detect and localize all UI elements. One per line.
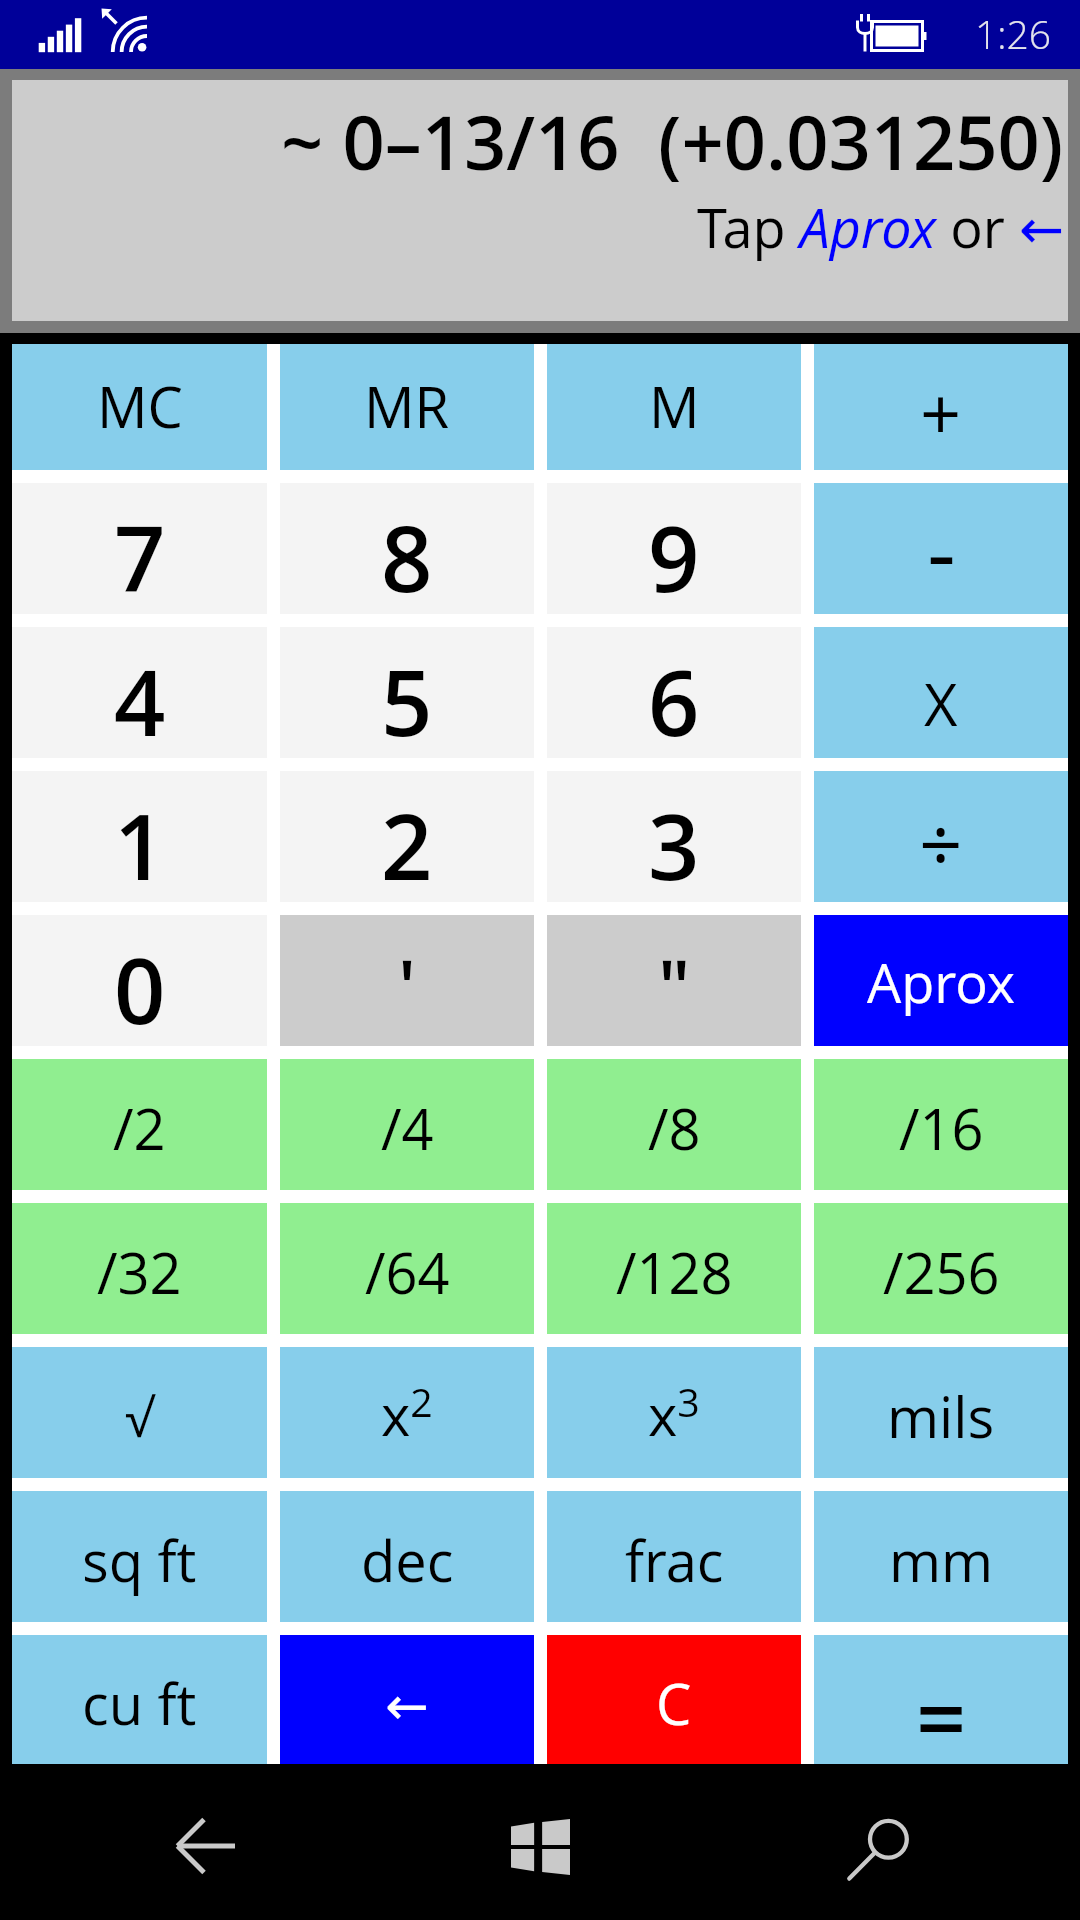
button[interactable]: = <box>814 1635 1068 1764</box>
staticText: cu ft <box>82 1665 197 1741</box>
button[interactable]: mm <box>814 1491 1068 1622</box>
staticText: ÷ <box>919 791 963 894</box>
button[interactable]: /32 <box>12 1203 267 1334</box>
button[interactable]: √ <box>12 1347 267 1478</box>
button[interactable]: 5 <box>280 627 534 758</box>
staticText: 9 <box>648 496 700 619</box>
staticText: C <box>656 1665 692 1741</box>
staticText: 2 <box>381 784 433 907</box>
button[interactable]: frac <box>547 1491 801 1622</box>
button[interactable]: MR <box>280 344 534 470</box>
staticText: dec <box>361 1522 454 1598</box>
button[interactable]: ÷ <box>814 771 1068 902</box>
staticText: " <box>658 935 691 1036</box>
staticText: ~ 0–13/16 (+0.031250) <box>281 91 1064 192</box>
staticText: 3 <box>648 784 700 907</box>
staticText: x2 <box>381 1375 433 1452</box>
staticText: ' <box>398 935 416 1036</box>
button[interactable]: cu ft <box>12 1635 267 1764</box>
button[interactable]: x3 <box>547 1347 801 1478</box>
button[interactable]: /8 <box>547 1059 801 1190</box>
staticText: MR <box>364 368 450 444</box>
staticText: /16 <box>899 1090 984 1166</box>
staticText: + <box>920 363 962 461</box>
staticText: M <box>649 368 700 444</box>
button[interactable]: 3 <box>547 771 801 902</box>
staticText: /128 <box>616 1234 733 1310</box>
staticText: 8 <box>381 496 433 619</box>
staticText: /64 <box>365 1234 450 1310</box>
button[interactable]: - <box>814 483 1068 614</box>
button[interactable]: sq ft <box>12 1491 267 1622</box>
button[interactable]: + <box>814 344 1068 470</box>
button[interactable]: 9 <box>547 483 801 614</box>
staticText: Aprox <box>867 945 1016 1019</box>
staticText: 1:26 <box>975 7 1052 60</box>
button[interactable]: dec <box>280 1491 534 1622</box>
button[interactable]: X <box>814 627 1068 758</box>
button[interactable]: C <box>547 1635 801 1764</box>
staticText: mils <box>887 1378 995 1454</box>
button[interactable]: Start <box>465 1764 615 1920</box>
staticText: √ <box>125 1381 154 1452</box>
staticText: 6 <box>648 640 700 763</box>
button[interactable]: 6 <box>547 627 801 758</box>
staticText: 5 <box>381 640 433 763</box>
staticText: 1 <box>114 784 166 907</box>
button[interactable]: mils <box>814 1347 1068 1478</box>
staticText: 0 <box>114 928 166 1051</box>
staticText: frac <box>625 1522 724 1598</box>
staticText: ← <box>385 1676 429 1737</box>
staticText: 7 <box>114 496 166 619</box>
staticText: 4 <box>114 640 166 763</box>
button[interactable]: ' <box>280 915 534 1046</box>
staticText: /2 <box>113 1090 166 1166</box>
staticText: /4 <box>381 1090 434 1166</box>
staticText: mm <box>889 1522 994 1598</box>
staticText: = <box>916 1657 967 1777</box>
button[interactable]: Back <box>130 1764 280 1920</box>
staticText: MC <box>97 368 183 444</box>
button[interactable]: 4 <box>12 627 267 758</box>
button[interactable]: M <box>547 344 801 470</box>
button[interactable]: " <box>547 915 801 1046</box>
staticText: /8 <box>648 1090 701 1166</box>
staticText: sq ft <box>82 1522 197 1598</box>
button[interactable]: 1 <box>12 771 267 902</box>
button[interactable]: /256 <box>814 1203 1068 1334</box>
staticText: - <box>927 489 956 612</box>
staticText: /256 <box>883 1234 1000 1310</box>
button[interactable]: x2 <box>280 1347 534 1478</box>
button[interactable]: /2 <box>12 1059 267 1190</box>
staticText: /32 <box>97 1234 182 1310</box>
button[interactable]: 7 <box>12 483 267 614</box>
button[interactable]: Aprox <box>814 915 1068 1046</box>
button[interactable]: /16 <box>814 1059 1068 1190</box>
button[interactable]: 8 <box>280 483 534 614</box>
staticText: X <box>924 664 958 743</box>
staticText: x3 <box>648 1375 700 1452</box>
button[interactable]: Search <box>810 1764 960 1920</box>
button[interactable]: ← <box>280 1635 534 1764</box>
button[interactable]: 2 <box>280 771 534 902</box>
button[interactable]: /128 <box>547 1203 801 1334</box>
button[interactable]: MC <box>12 344 267 470</box>
staticText: Tap Aprox or ← <box>697 190 1065 264</box>
button[interactable]: /64 <box>280 1203 534 1334</box>
button[interactable]: 0 <box>12 915 267 1046</box>
button[interactable]: /4 <box>280 1059 534 1190</box>
